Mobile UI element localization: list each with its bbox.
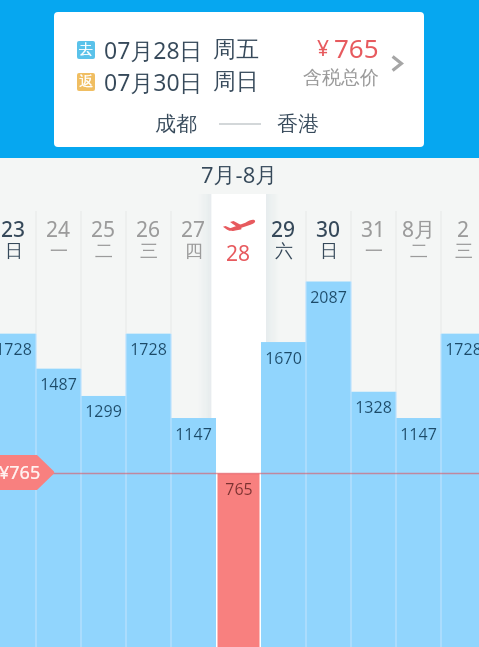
staticText: ¥ — [317, 34, 330, 63]
button[interactable]: 26 — [126, 194, 171, 282]
staticText: 765 — [225, 478, 253, 500]
button[interactable]: 24 — [36, 194, 81, 282]
button[interactable]: 去 — [54, 12, 424, 147]
staticText: 三 — [140, 240, 158, 263]
staticText: ¥765 — [0, 460, 41, 485]
staticText: 1147 — [175, 423, 212, 445]
staticText: 周五 — [213, 35, 259, 64]
staticText: 27 — [181, 215, 206, 244]
staticText: 1328 — [355, 396, 392, 418]
staticText: 1728 — [130, 338, 167, 360]
staticText: 25 — [91, 215, 116, 244]
staticText: 07月28日 — [104, 34, 203, 65]
staticText: 去 — [79, 41, 93, 59]
staticText: 返 — [79, 73, 93, 91]
staticText: 1487 — [40, 373, 77, 395]
staticText: 7月-8月 — [201, 159, 278, 189]
staticText: 28 — [226, 239, 251, 268]
staticText: 二 — [95, 240, 113, 263]
button[interactable]: 8月 — [396, 194, 441, 282]
button[interactable]: 23 — [0, 194, 36, 282]
staticText: 含税总价 — [303, 66, 379, 90]
button[interactable]: 25 — [81, 194, 126, 282]
button[interactable]: 27 — [171, 194, 216, 282]
button[interactable]: 29 — [261, 194, 306, 282]
staticText: 2087 — [310, 286, 347, 308]
staticText: 1728 — [445, 338, 479, 360]
staticText: 1728 — [0, 338, 32, 360]
staticText: 1147 — [400, 423, 437, 445]
button[interactable]: 2 — [441, 194, 479, 282]
staticText: 30 — [316, 215, 341, 244]
staticText: 成都 — [155, 111, 197, 137]
staticText: 29 — [271, 215, 296, 244]
staticText: 日 — [320, 240, 338, 263]
button[interactable]: 查看详情 — [382, 48, 412, 78]
staticText: 一 — [50, 240, 68, 263]
staticText: 23 — [1, 215, 26, 244]
staticText: 三 — [455, 240, 473, 263]
staticText: 31 — [361, 215, 386, 244]
staticText: 1670 — [265, 347, 302, 369]
staticText: 日 — [5, 240, 23, 263]
staticText: 周日 — [213, 67, 259, 96]
staticText: 四 — [185, 240, 203, 263]
button[interactable]: 31 — [351, 194, 396, 282]
staticText: 香港 — [277, 111, 319, 137]
staticText: 765 — [334, 30, 379, 65]
staticText: 二 — [410, 240, 428, 263]
staticText: 26 — [136, 215, 161, 244]
staticText: 24 — [46, 215, 71, 244]
button[interactable]: 28 — [216, 194, 261, 282]
staticText: 1299 — [85, 400, 122, 422]
staticText: 六 — [275, 240, 293, 263]
button[interactable]: 30 — [306, 194, 351, 282]
staticText: 07月30日 — [104, 66, 203, 97]
staticText: 一 — [365, 240, 383, 263]
staticText: 2 — [457, 215, 470, 244]
staticText: 8月 — [402, 215, 436, 244]
